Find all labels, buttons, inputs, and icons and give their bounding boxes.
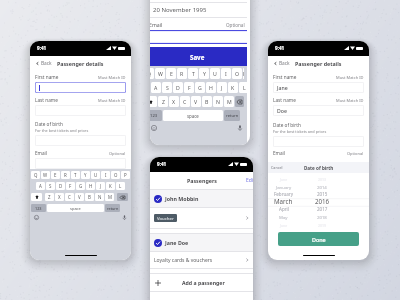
button[interactable]: V xyxy=(191,96,201,107)
button[interactable]: B xyxy=(202,96,212,107)
button[interactable]: A xyxy=(151,82,161,93)
staticText: Doe xyxy=(277,107,287,114)
button[interactable]: M xyxy=(105,193,114,201)
button[interactable]: Shift xyxy=(31,193,42,201)
button[interactable]: I xyxy=(221,68,231,79)
button[interactable]: T xyxy=(71,171,80,179)
button[interactable]: C xyxy=(65,193,74,201)
button[interactable]: Delete xyxy=(117,193,128,201)
button[interactable]: Doe xyxy=(273,105,364,116)
button[interactable]: Jane Doe xyxy=(150,234,253,251)
button[interactable]: E xyxy=(51,171,60,179)
button[interactable]: O xyxy=(111,171,120,179)
button[interactable]: Cancel xyxy=(268,165,283,170)
staticText: C xyxy=(68,194,71,200)
button[interactable]: A xyxy=(36,182,45,190)
button[interactable]: C xyxy=(180,96,190,107)
button[interactable]: F xyxy=(184,82,194,93)
button[interactable]: W xyxy=(155,68,165,79)
button[interactable]: Edit xyxy=(244,177,253,184)
button[interactable]: Jane xyxy=(273,82,364,93)
button[interactable]: S xyxy=(162,82,172,93)
button[interactable]: Q xyxy=(31,171,40,179)
button[interactable]: G xyxy=(76,182,85,190)
button[interactable]: K xyxy=(228,82,238,93)
button[interactable]: R xyxy=(177,68,187,79)
button[interactable]: X xyxy=(169,96,179,107)
staticText: Y xyxy=(84,172,87,178)
button[interactable]: Back xyxy=(273,58,291,69)
button[interactable]: U xyxy=(210,68,220,79)
staticText: Jane xyxy=(277,84,288,91)
button[interactable]: N xyxy=(213,96,223,107)
button[interactable]: 123 xyxy=(150,110,162,121)
staticText: J xyxy=(100,183,102,189)
button[interactable]: Back xyxy=(35,58,53,69)
button[interactable]: John Mobbin xyxy=(150,190,253,207)
button[interactable]: V xyxy=(75,193,84,201)
button[interactable] xyxy=(35,158,126,169)
staticText: N xyxy=(216,98,220,105)
button[interactable]: H xyxy=(206,82,216,93)
button[interactable] xyxy=(273,136,364,147)
staticText: K xyxy=(109,183,112,189)
staticText: June xyxy=(280,223,288,228)
button[interactable]: K xyxy=(106,182,115,190)
button[interactable]: F xyxy=(66,182,75,190)
button[interactable]: J xyxy=(217,82,227,93)
button[interactable]: G xyxy=(195,82,205,93)
button[interactable]: Add a passenger xyxy=(150,274,253,291)
button[interactable]: R xyxy=(61,171,70,179)
button[interactable]: Q xyxy=(150,68,154,79)
staticText: Optional xyxy=(347,151,364,156)
staticText: B xyxy=(205,98,209,105)
button[interactable]: T xyxy=(188,68,198,79)
button[interactable]: O xyxy=(232,68,242,79)
other: Dictate xyxy=(237,125,243,131)
button[interactable]: N xyxy=(95,193,104,201)
button[interactable]: space xyxy=(47,204,104,212)
staticText: Must Match ID xyxy=(98,98,126,103)
button[interactable]: P xyxy=(243,68,244,79)
button[interactable]: Y xyxy=(81,171,90,179)
button[interactable]: return xyxy=(105,204,120,212)
button[interactable]: I xyxy=(101,171,110,179)
button[interactable]: W xyxy=(41,171,50,179)
button[interactable]: return xyxy=(224,110,240,121)
staticText: Z xyxy=(48,194,51,200)
button[interactable]: L xyxy=(116,182,125,190)
button[interactable]: Z xyxy=(45,193,54,201)
button[interactable]: Z xyxy=(158,96,168,107)
button[interactable] xyxy=(35,82,126,93)
button[interactable]: Y xyxy=(199,68,209,79)
button[interactable]: E xyxy=(166,68,176,79)
button[interactable]: X xyxy=(55,193,64,201)
button[interactable]: L xyxy=(239,82,249,93)
button[interactable]: B xyxy=(85,193,94,201)
button[interactable]: Save xyxy=(150,47,247,66)
button[interactable]: Loyalty cards & vouchers xyxy=(150,252,253,268)
button[interactable]: Delete xyxy=(235,96,244,107)
button[interactable] xyxy=(35,105,126,116)
staticText: U xyxy=(213,70,217,77)
staticText: June xyxy=(280,177,288,182)
button[interactable]: P xyxy=(121,171,130,179)
staticText: Done xyxy=(312,236,326,243)
staticText: 2017 xyxy=(317,206,328,212)
staticText: B xyxy=(88,194,91,200)
staticText: For the best tickets and prices xyxy=(35,128,89,133)
button[interactable]: M xyxy=(224,96,234,107)
button[interactable]: Done xyxy=(278,232,359,246)
button[interactable]: Shift xyxy=(150,96,157,107)
button[interactable]: Voucher xyxy=(150,208,253,228)
button[interactable]: D xyxy=(56,182,65,190)
button[interactable]: space xyxy=(163,110,223,121)
staticText: 2013 xyxy=(318,177,327,182)
button[interactable]: D xyxy=(173,82,183,93)
button[interactable] xyxy=(35,135,126,146)
button[interactable]: 123 xyxy=(31,204,46,212)
button[interactable]: S xyxy=(46,182,55,190)
button[interactable]: H xyxy=(86,182,95,190)
button[interactable]: U xyxy=(91,171,100,179)
button[interactable]: J xyxy=(96,182,105,190)
